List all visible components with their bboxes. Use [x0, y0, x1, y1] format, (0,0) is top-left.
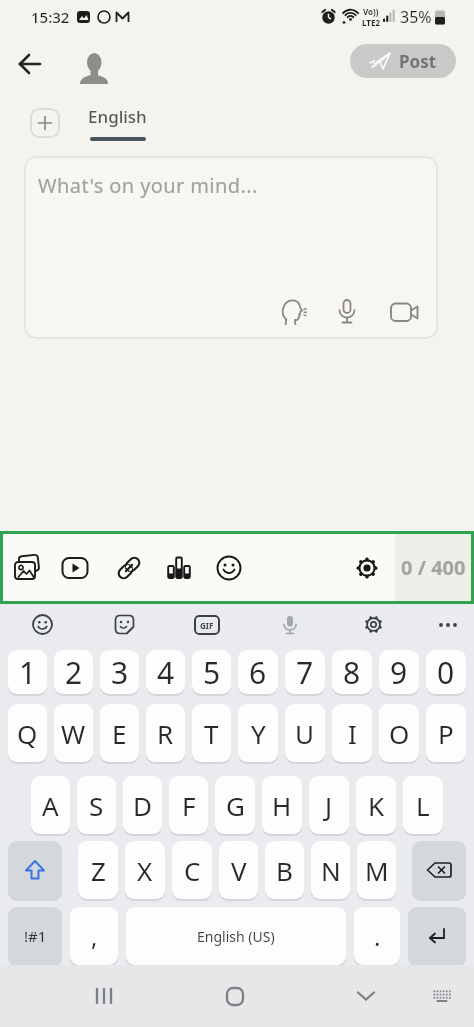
staticText: G — [226, 788, 245, 823]
button[interactable]: 8 — [332, 650, 372, 694]
button[interactable]: , — [70, 907, 118, 965]
button[interactable] — [50, 543, 100, 593]
staticText: B — [276, 853, 293, 888]
staticText: R — [157, 716, 174, 751]
staticText: J — [325, 788, 333, 823]
staticText: W — [61, 716, 86, 751]
button[interactable] — [84, 976, 124, 1016]
staticText: L — [416, 788, 430, 823]
button[interactable]: L — [403, 776, 443, 834]
button[interactable]: V — [219, 841, 258, 899]
button[interactable]: What's on your mind... — [24, 156, 438, 339]
button[interactable]: 3 — [100, 650, 139, 694]
button[interactable]: 9 — [379, 650, 419, 694]
button[interactable]: N — [311, 841, 350, 899]
button[interactable]: 1 — [8, 650, 47, 694]
staticText: !#1 — [24, 926, 47, 946]
button[interactable] — [204, 543, 254, 593]
staticText: Vo)) — [363, 6, 379, 17]
button[interactable] — [339, 540, 395, 596]
staticText: LTE2 — [362, 17, 380, 28]
button[interactable] — [408, 907, 466, 965]
button[interactable] — [353, 604, 393, 645]
button[interactable]: A — [31, 776, 70, 834]
staticText: M — [365, 853, 389, 888]
button[interactable]: 7 — [285, 650, 325, 694]
staticText: GIF — [200, 620, 214, 631]
button[interactable]: Z — [78, 841, 118, 899]
button[interactable]: C — [172, 841, 212, 899]
button[interactable]: U — [285, 704, 325, 762]
staticText: 0 — [437, 652, 455, 693]
button[interactable] — [8, 841, 62, 899]
button[interactable]: English (US) — [126, 907, 346, 965]
button[interactable] — [335, 299, 359, 325]
staticText: N — [321, 853, 341, 888]
button[interactable]: !#1 — [8, 907, 62, 965]
button[interactable]: G — [215, 776, 255, 834]
button[interactable]: P — [426, 704, 466, 762]
button[interactable]: E — [100, 704, 139, 762]
button[interactable]: X — [125, 841, 165, 899]
button[interactable] — [215, 976, 255, 1016]
button[interactable] — [154, 543, 204, 593]
staticText: What's on your mind... — [38, 172, 258, 199]
staticText: Post — [399, 50, 437, 73]
staticText: K — [368, 788, 385, 823]
button[interactable] — [412, 841, 466, 899]
button[interactable]: W — [54, 704, 93, 762]
staticText: 9 — [390, 652, 408, 693]
button[interactable]: H — [262, 776, 302, 834]
staticText: O — [389, 716, 410, 751]
button[interactable]: D — [123, 776, 162, 834]
button[interactable] — [278, 298, 306, 326]
staticText: . — [374, 920, 381, 953]
staticText: 35% — [400, 6, 432, 28]
button[interactable] — [8, 42, 52, 86]
button[interactable] — [422, 976, 462, 1016]
button[interactable]: . — [354, 907, 400, 965]
button[interactable]: 2 — [54, 650, 93, 694]
staticText: S — [89, 788, 104, 823]
button[interactable]: GIF — [187, 604, 227, 645]
staticText: 7 — [296, 652, 314, 693]
button[interactable]: 0 — [426, 650, 466, 694]
button[interactable]: K — [356, 776, 396, 834]
button[interactable]: Y — [238, 704, 278, 762]
staticText: Y — [251, 716, 266, 751]
staticText: X — [137, 853, 153, 888]
button[interactable]: T — [192, 704, 231, 762]
button[interactable] — [104, 543, 154, 593]
button[interactable]: I — [332, 704, 372, 762]
button[interactable]: R — [146, 704, 185, 762]
staticText: Q — [17, 716, 38, 751]
button[interactable] — [104, 604, 144, 645]
staticText: 3 — [111, 652, 129, 693]
button[interactable]: 6 — [238, 650, 278, 694]
button[interactable] — [346, 976, 386, 1016]
button[interactable] — [3, 544, 50, 591]
button[interactable] — [30, 108, 60, 138]
button[interactable]: Q — [8, 704, 47, 762]
staticText: C — [184, 853, 201, 888]
button[interactable] — [390, 300, 419, 324]
button[interactable] — [270, 604, 310, 645]
button[interactable]: M — [357, 841, 396, 899]
button[interactable]: 4 — [146, 650, 185, 694]
button[interactable] — [428, 604, 468, 645]
staticText: 15:32 — [31, 7, 70, 27]
staticText: E — [112, 716, 127, 751]
button[interactable]: 5 — [192, 650, 231, 694]
button[interactable] — [22, 604, 62, 645]
staticText: 6 — [249, 652, 267, 693]
staticText: A — [42, 788, 59, 823]
button[interactable]: J — [309, 776, 349, 834]
button[interactable]: S — [77, 776, 116, 834]
button[interactable]: Post — [350, 44, 456, 78]
button[interactable]: O — [379, 704, 419, 762]
staticText: , — [91, 920, 98, 953]
button[interactable]: F — [169, 776, 208, 834]
button[interactable]: English — [88, 105, 147, 141]
staticText: 2 — [65, 652, 83, 693]
button[interactable]: B — [265, 841, 304, 899]
